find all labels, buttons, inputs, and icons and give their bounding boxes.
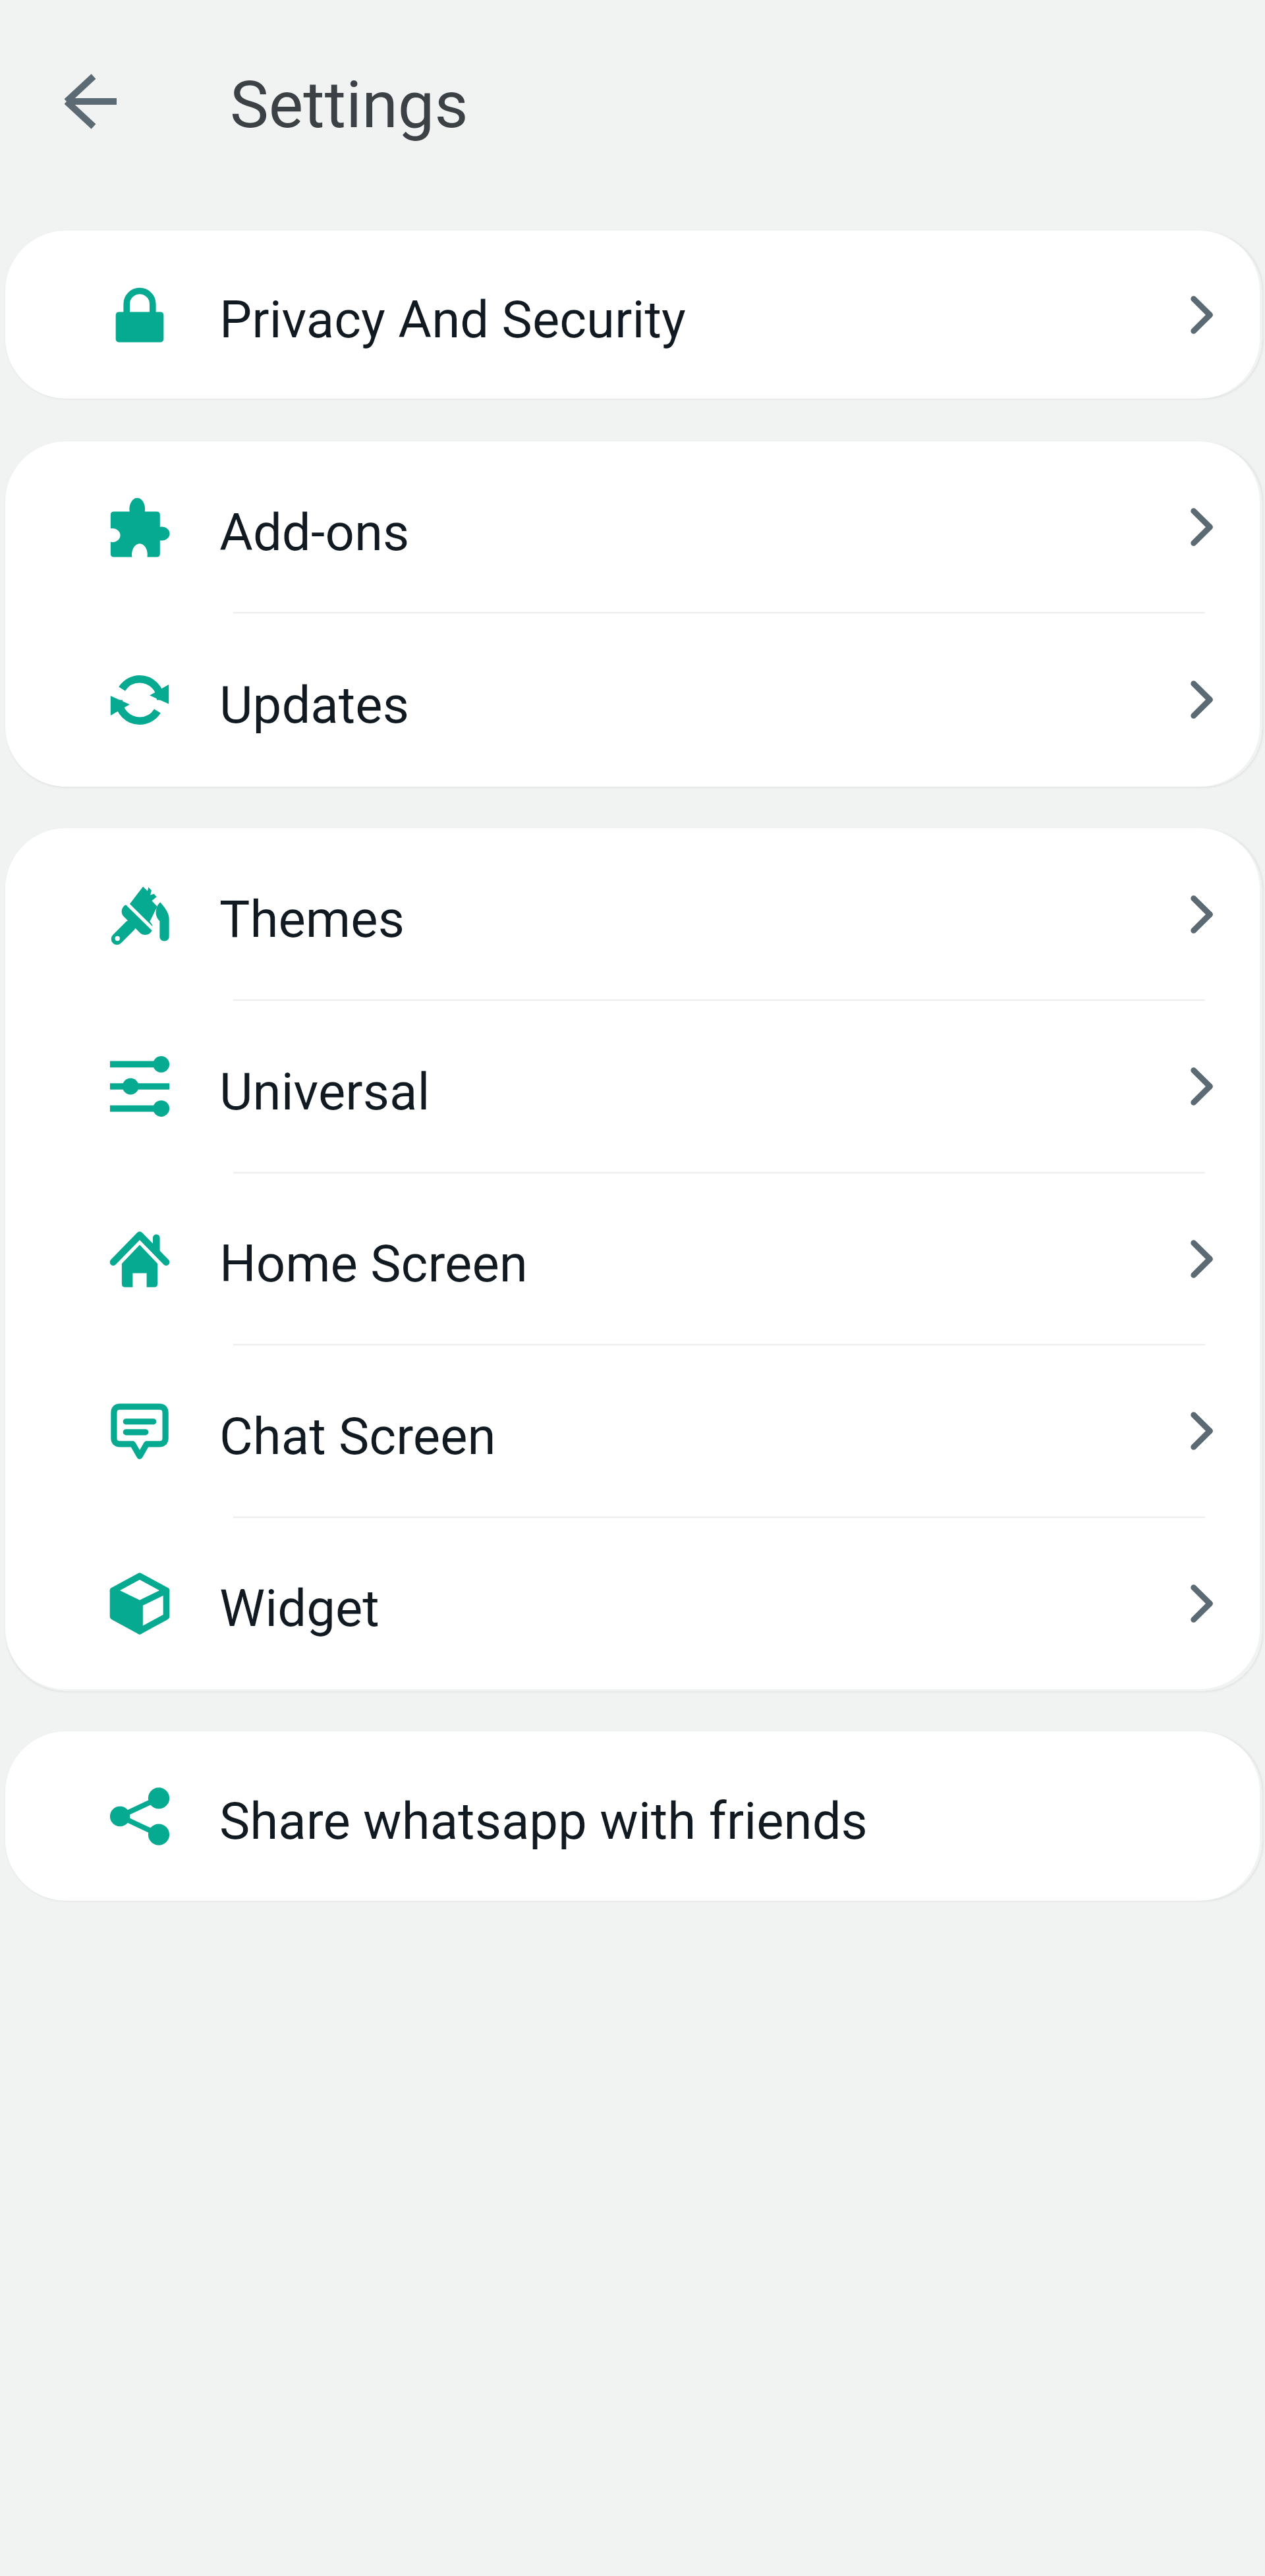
button[interactable]: Universal (5, 1000, 1260, 1173)
staticText: Settings (230, 67, 468, 143)
button[interactable]: Chat Screen (5, 1345, 1260, 1517)
staticText: Add-ons (219, 503, 410, 563)
button[interactable]: Updates (5, 613, 1260, 787)
staticText: Privacy And Security (219, 290, 686, 350)
button[interactable]: Back (42, 62, 121, 141)
staticText: Home Screen (219, 1234, 528, 1294)
button[interactable]: Add-ons (5, 441, 1260, 613)
staticText: Share whatsapp with friends (219, 1791, 868, 1851)
button[interactable]: Home Screen (5, 1173, 1260, 1345)
button[interactable]: Themes (5, 828, 1260, 1000)
staticText: Widget (219, 1579, 379, 1638)
button[interactable]: Privacy And Security (5, 231, 1260, 399)
staticText: Chat Screen (219, 1407, 496, 1467)
staticText: Updates (219, 675, 409, 735)
button[interactable]: Widget (5, 1517, 1260, 1689)
staticText: Universal (219, 1062, 430, 1122)
staticText: Themes (219, 889, 405, 949)
button[interactable]: Share whatsapp with friends (5, 1731, 1260, 1901)
